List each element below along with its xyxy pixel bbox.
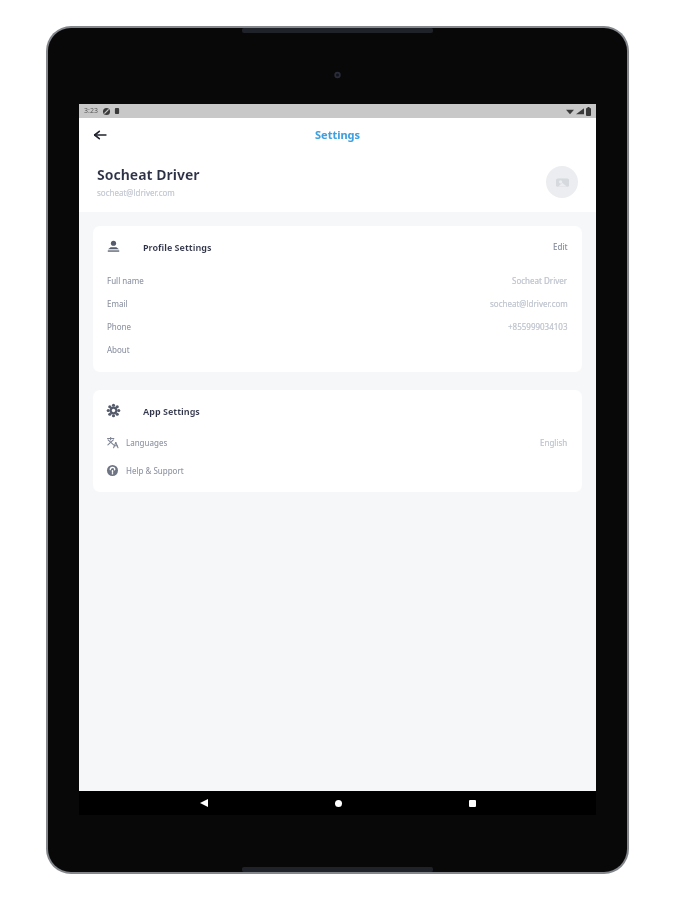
button[interactable]: Back [87, 122, 113, 148]
button[interactable]: Home [328, 793, 348, 813]
staticText: Email [107, 298, 128, 309]
button[interactable]: Back [194, 793, 214, 813]
staticText: Settings [315, 127, 361, 142]
staticText: Socheat Driver [512, 275, 568, 286]
staticText: socheat@ldriver.com [97, 187, 175, 198]
button[interactable]: Profile Settings [93, 237, 582, 256]
staticText: 3:23 [84, 106, 98, 116]
button[interactable]: Recent apps [462, 793, 482, 813]
button[interactable]: App Settings [93, 401, 582, 420]
staticText: English [540, 437, 568, 448]
staticText: Socheat Driver [97, 165, 200, 184]
staticText: Full name [107, 275, 144, 286]
staticText: Profile Settings [143, 241, 212, 253]
staticText: socheat@ldriver.com [490, 298, 568, 309]
staticText: +855999034103 [508, 321, 568, 332]
staticText: App Settings [143, 405, 200, 417]
button[interactable]: Languages [93, 432, 582, 453]
button[interactable]: Email [93, 292, 582, 315]
staticText: Edit [553, 241, 568, 252]
button[interactable]: Full name [93, 269, 582, 292]
button[interactable]: Change profile photo [546, 166, 578, 198]
staticText: Help & Support [126, 465, 184, 476]
staticText: Phone [107, 321, 132, 332]
button[interactable]: Phone [93, 315, 582, 338]
staticText: Languages [126, 437, 168, 448]
button[interactable]: About [93, 338, 582, 361]
button[interactable]: Help & Support [93, 460, 582, 481]
staticText: About [107, 344, 130, 355]
